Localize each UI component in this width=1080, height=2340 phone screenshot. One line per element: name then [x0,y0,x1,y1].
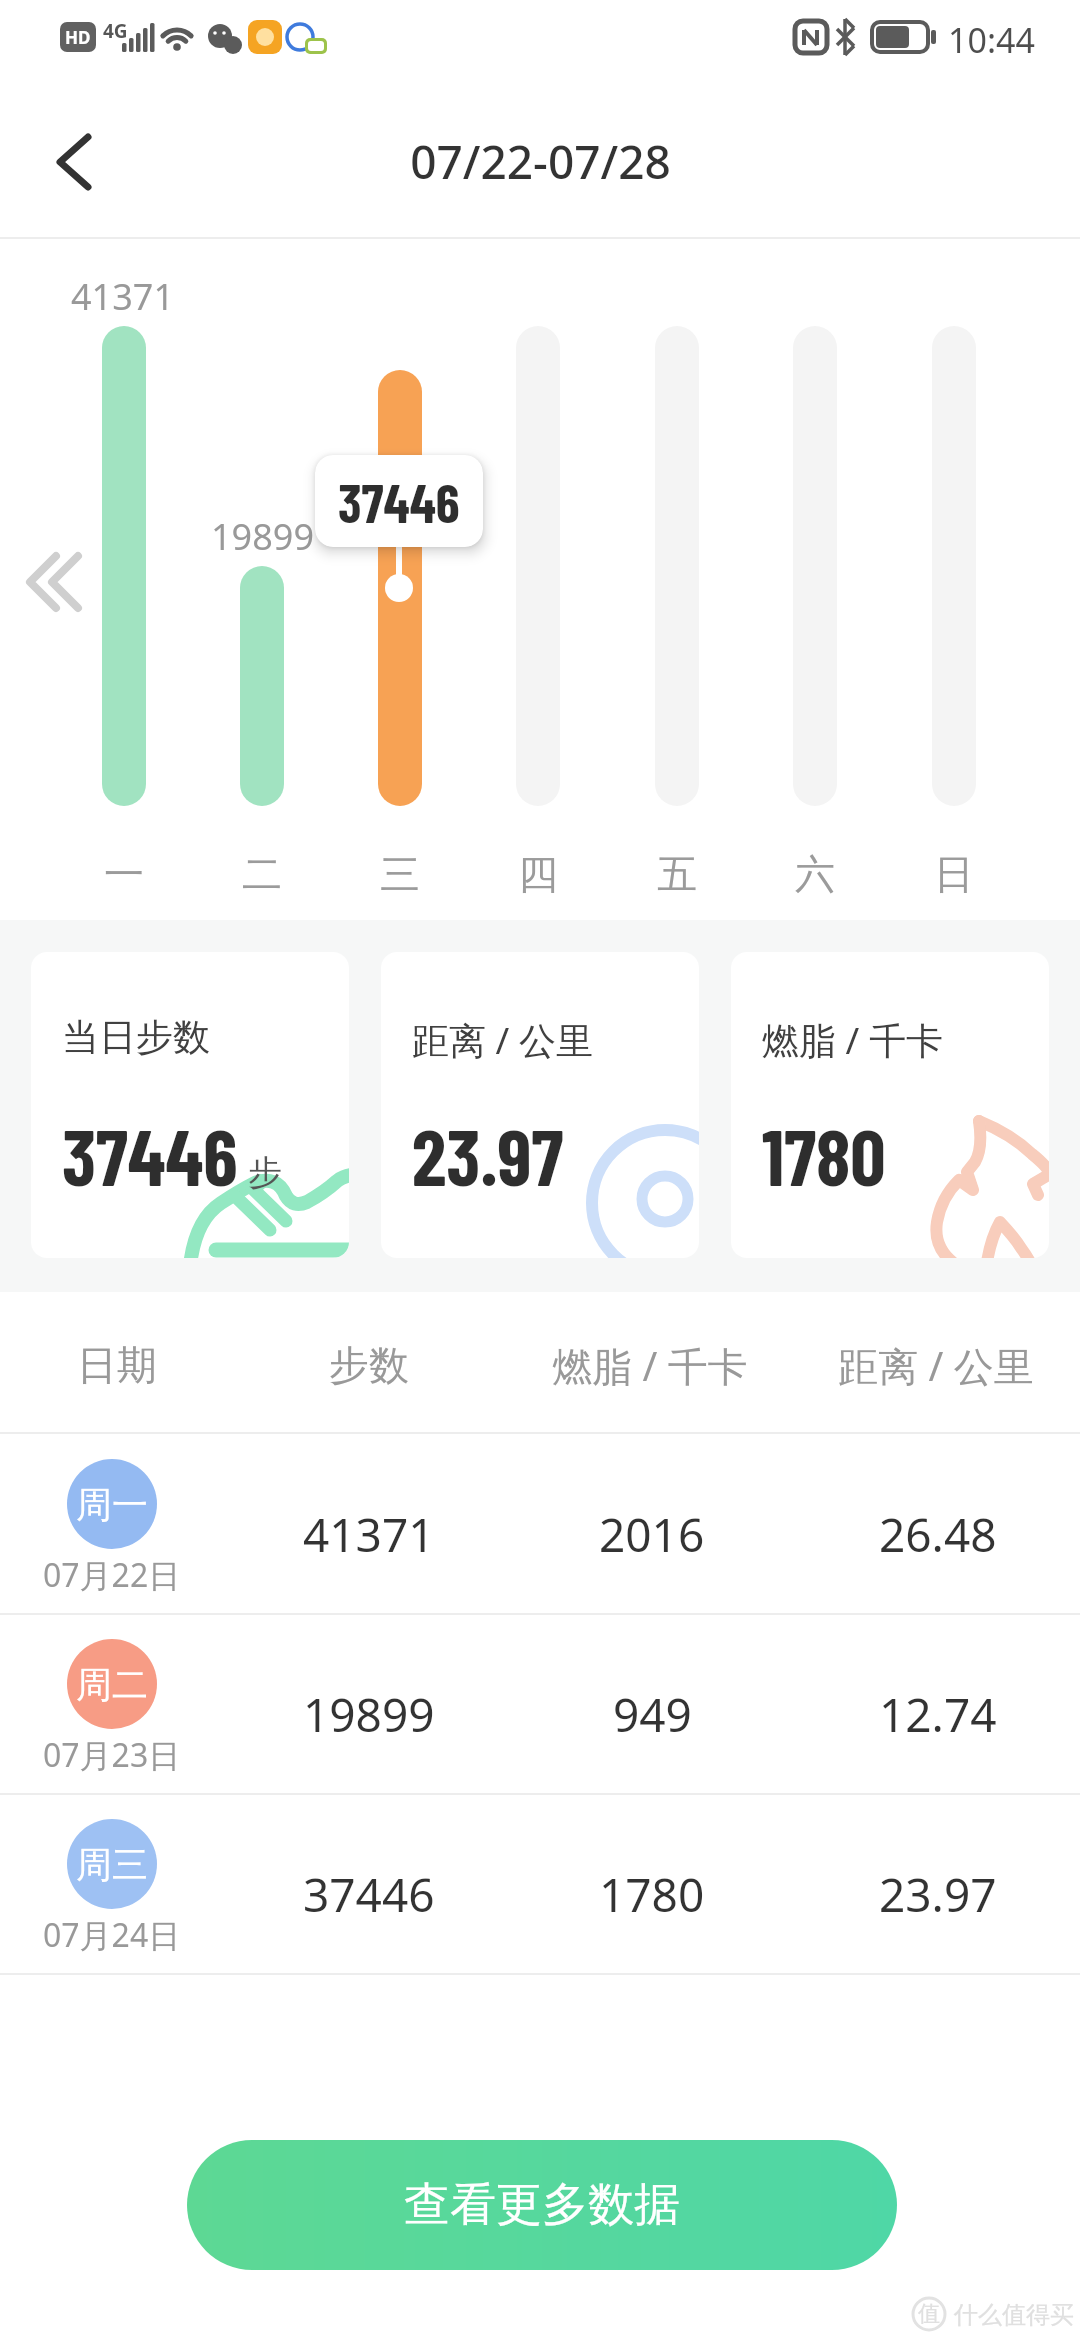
staticText: 日 [934,849,974,899]
staticText: 步数 [329,1340,409,1390]
staticText: 当日步数 [62,1014,210,1061]
button[interactable]: 周一 [0,1433,1080,1613]
staticText: 19899 [211,512,314,561]
staticText: 41371 [303,1503,435,1555]
staticText: 一 [104,849,144,899]
staticText: 37446 [303,1863,435,1915]
staticText: 23.97 [412,1108,564,1202]
staticText: 07/22-07/28 [410,130,671,193]
staticText: HD [65,26,91,49]
staticText: 周二 [76,1662,148,1707]
staticText: 37446 [338,469,460,534]
staticText: 四 [518,849,558,899]
staticText: 二 [242,849,282,899]
staticText: 1780 [599,1863,705,1915]
staticText: 燃脂 / 千卡 [552,1338,748,1393]
staticText: 41371 [71,272,174,321]
button[interactable]: 周二 [0,1613,1080,1793]
staticText: 12.74 [879,1683,997,1735]
staticText: 距离 / 公里 [838,1338,1034,1393]
staticText: 五 [657,849,697,899]
staticText: 2016 [599,1503,705,1555]
staticText: 日期 [77,1340,157,1390]
staticText: 燃脂 / 千卡 [762,1014,944,1065]
staticText: 07月24日 [43,1913,181,1957]
staticText: 值 [918,2300,940,2328]
staticText: 六 [795,849,835,899]
staticText: 查看更多数据 [404,2176,680,2234]
staticText: 距离 / 公里 [412,1014,594,1065]
staticText: 三 [380,849,420,899]
staticText: 949 [613,1683,692,1735]
staticText: 周三 [76,1842,148,1887]
staticText: 07月23日 [43,1733,181,1777]
staticText: 19899 [303,1683,435,1735]
button[interactable]: 查看更多数据 [187,2140,897,2270]
button[interactable] [16,542,100,626]
staticText: 10:44 [948,17,1035,63]
button[interactable] [30,125,105,200]
button[interactable]: 周三 [0,1793,1080,1973]
staticText: 37446 [62,1108,238,1202]
staticText: 步 [248,1151,282,1194]
staticText: 1780 [762,1108,886,1202]
staticText: 23.97 [879,1863,997,1915]
staticText: 4G [103,18,128,44]
staticText: 07月22日 [43,1553,181,1597]
staticText: 什么值得买 [954,2300,1074,2330]
staticText: 26.48 [879,1503,997,1555]
staticText: 周一 [76,1482,148,1527]
